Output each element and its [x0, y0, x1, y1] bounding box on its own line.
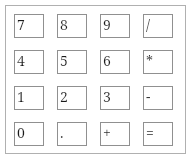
staticText: 2: [60, 87, 68, 106]
button[interactable]: *: [143, 50, 173, 74]
button[interactable]: 3: [100, 86, 130, 110]
staticText: *: [146, 51, 153, 70]
button[interactable]: 9: [100, 14, 130, 38]
button[interactable]: 2: [57, 86, 87, 110]
button[interactable]: 1: [14, 86, 44, 110]
button[interactable]: 5: [57, 50, 87, 74]
button[interactable]: .: [57, 122, 87, 146]
button[interactable]: -: [143, 86, 173, 110]
staticText: /: [146, 15, 151, 34]
staticText: 7: [17, 15, 25, 34]
staticText: 1: [17, 87, 25, 106]
staticText: 5: [60, 51, 68, 70]
staticText: 8: [60, 15, 68, 34]
button[interactable]: =: [143, 122, 173, 146]
button[interactable]: +: [100, 122, 130, 146]
staticText: 4: [17, 51, 25, 70]
button[interactable]: 6: [100, 50, 130, 74]
staticText: .: [60, 123, 64, 142]
staticText: 9: [103, 15, 111, 34]
button[interactable]: 0: [14, 122, 44, 146]
button[interactable]: /: [143, 14, 173, 38]
staticText: 6: [103, 51, 111, 70]
staticText: -: [146, 87, 151, 106]
staticText: 3: [103, 87, 111, 106]
staticText: =: [146, 123, 154, 142]
staticText: +: [103, 123, 111, 142]
button[interactable]: 4: [14, 50, 44, 74]
button[interactable]: 8: [57, 14, 87, 38]
button[interactable]: 7: [14, 14, 44, 38]
staticText: 0: [17, 123, 25, 142]
